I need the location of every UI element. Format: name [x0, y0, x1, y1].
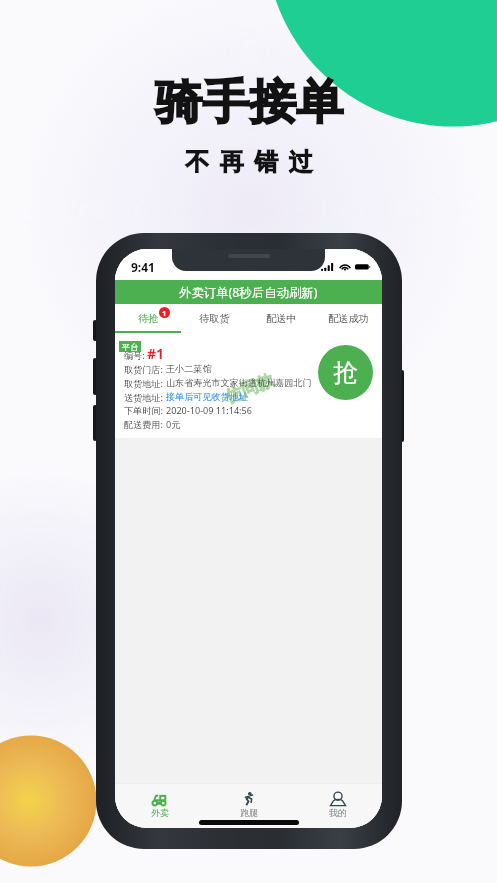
- staticText: 平台: [122, 342, 139, 352]
- staticText: 抢: [333, 357, 358, 388]
- button[interactable]: 跑腿: [204, 787, 293, 823]
- button[interactable]: 配送中: [248, 304, 315, 333]
- other: 外卖: [151, 793, 168, 806]
- staticText: 取货地址:: [124, 377, 166, 389]
- button[interactable]: 配送成功: [315, 304, 382, 333]
- staticText: 9:41: [131, 259, 155, 275]
- button[interactable]: 外卖: [115, 787, 204, 823]
- other: 跑腿: [242, 792, 255, 806]
- staticText: 配送成功: [328, 312, 369, 325]
- button[interactable]: 抢: [318, 345, 373, 400]
- staticText: 不再错过: [180, 147, 318, 177]
- staticText: 外卖订单(8秒后自动刷新): [179, 284, 318, 301]
- button[interactable]: 我的: [293, 787, 382, 823]
- staticText: 骑手接单: [155, 73, 343, 132]
- staticText: 0元: [166, 418, 181, 430]
- other: 我的: [330, 792, 346, 806]
- staticText: 编号:: [124, 349, 147, 361]
- staticText: 待抢: [138, 312, 159, 325]
- staticText: 仿同款: [222, 369, 277, 408]
- staticText: 接单后可见收货地址: [166, 391, 248, 402]
- staticText: 外卖: [151, 807, 169, 818]
- staticText: 2020-10-09 11:14:56: [166, 404, 252, 416]
- staticText: 送货地址:: [124, 391, 166, 403]
- staticText: 取货门店:: [124, 363, 166, 375]
- staticText: 1: [162, 308, 167, 318]
- staticText: 我的: [329, 807, 347, 818]
- staticText: 配送中: [266, 312, 297, 325]
- staticText: 配送费用:: [124, 418, 166, 430]
- staticText: 跑腿: [240, 807, 258, 818]
- button[interactable]: 待抢: [115, 304, 181, 333]
- staticText: 待取货: [199, 312, 230, 325]
- staticText: 山东省寿光市文家街道杭州嘉园北门: [166, 377, 312, 388]
- button[interactable]: 待取货: [181, 304, 248, 333]
- staticText: #1: [147, 344, 165, 363]
- staticText: 下单时间:: [124, 404, 166, 416]
- staticText: 王小二菜馆: [166, 363, 212, 374]
